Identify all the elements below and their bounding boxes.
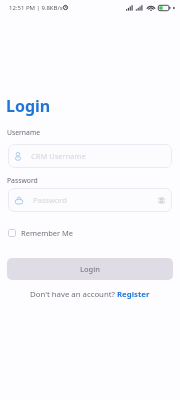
staticText: 12:51 PM | 9.8KB/s [9, 4, 63, 12]
staticText: Remember Me [21, 228, 74, 238]
staticText: Password [7, 176, 38, 185]
button[interactable]: CRM Username [8, 144, 172, 168]
staticText: CRM Username [31, 151, 86, 161]
staticText: Login [80, 264, 100, 274]
other: Show password [158, 197, 165, 204]
button[interactable]: Register [117, 289, 150, 300]
staticText: Username [7, 128, 41, 137]
staticText: Login [6, 95, 51, 117]
staticText: Password [33, 195, 67, 205]
button[interactable]: Password [8, 188, 172, 212]
button[interactable]: Remember Me [6, 226, 76, 240]
staticText: Don't have an account? [30, 289, 117, 300]
button[interactable]: Login [7, 258, 173, 280]
